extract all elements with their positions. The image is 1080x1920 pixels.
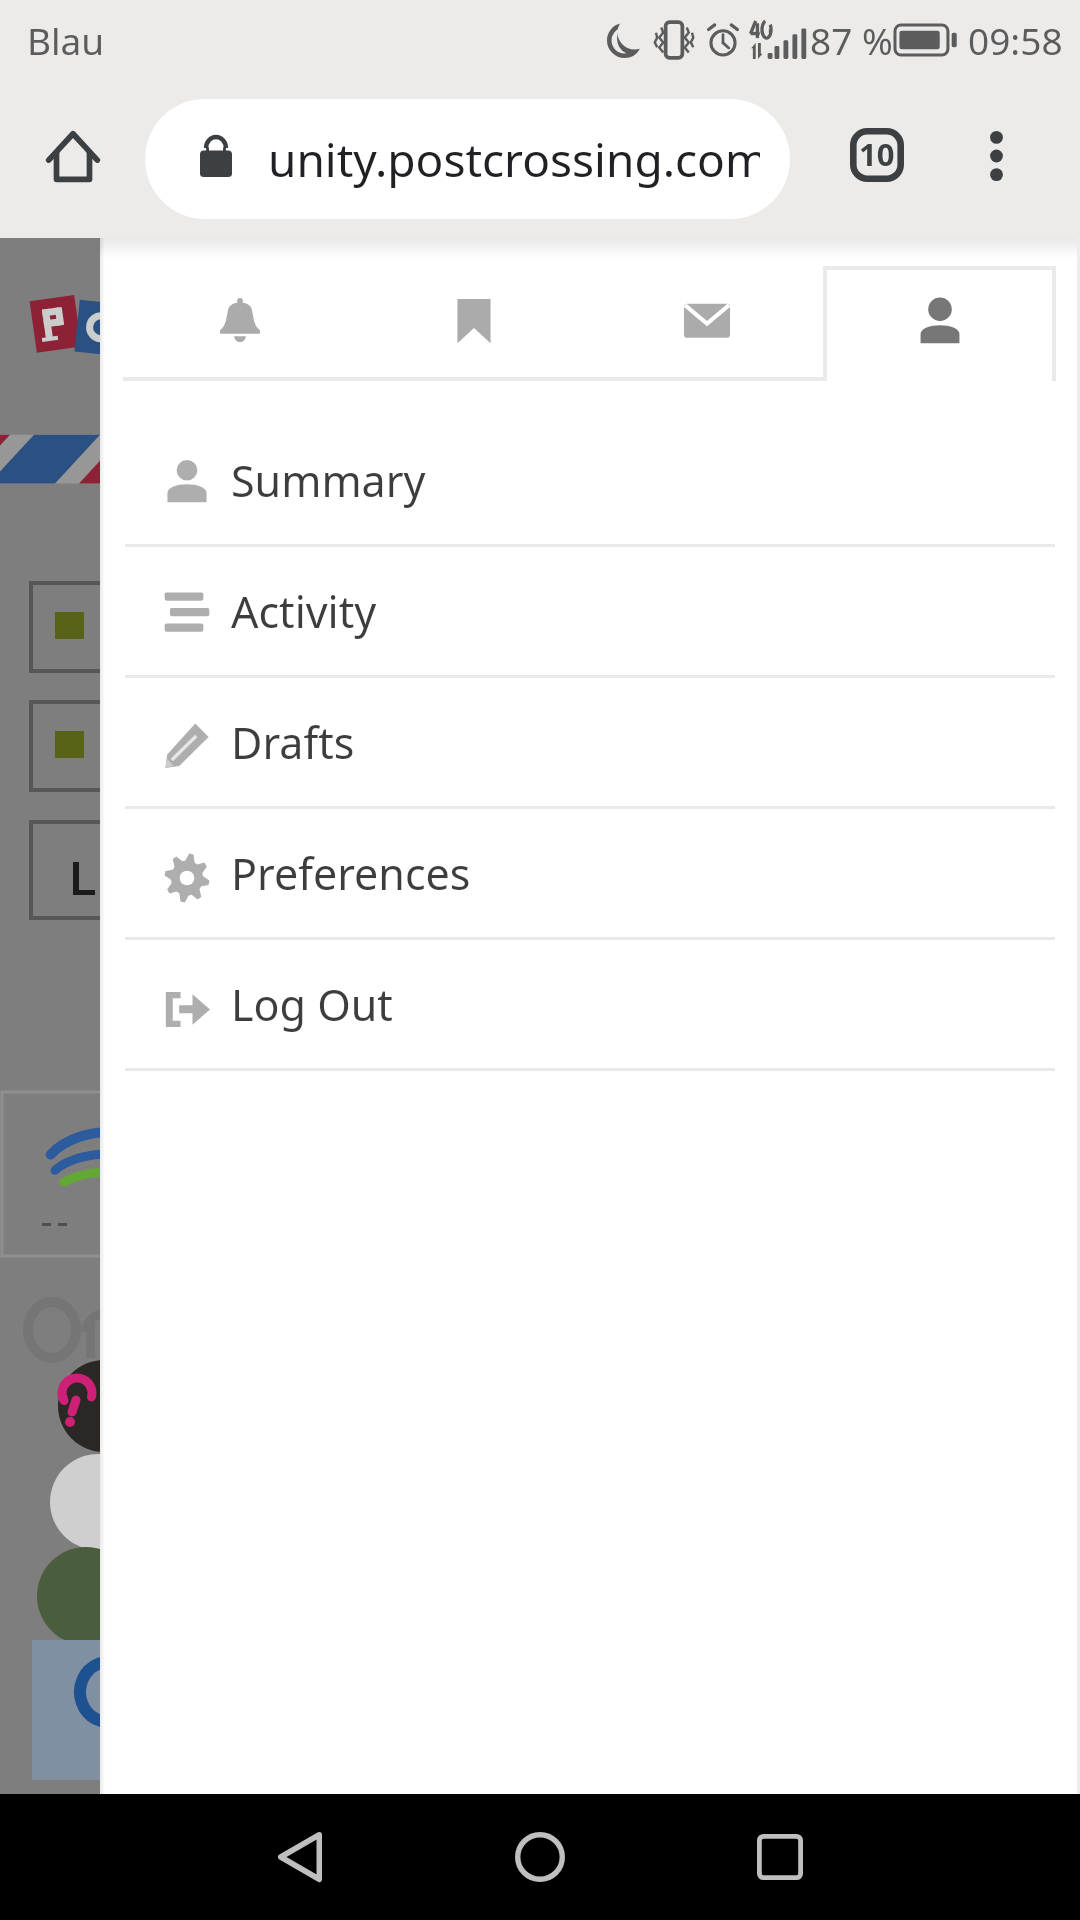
staticText: 87 % xyxy=(810,15,893,65)
button[interactable]: Tab xyxy=(123,238,357,381)
button[interactable]: Summary xyxy=(100,416,1080,547)
button[interactable]: Profile tab xyxy=(823,238,1056,381)
button[interactable]: Drafts xyxy=(100,678,1080,809)
staticText: Preferences xyxy=(231,844,471,903)
staticText: Activity xyxy=(231,582,377,641)
staticText: 10 xyxy=(859,133,895,175)
button[interactable]: Home xyxy=(480,1797,600,1917)
staticText: Summary xyxy=(231,451,426,510)
button[interactable]: unity.postcrossing.com xyxy=(145,99,790,219)
staticText: Log Out xyxy=(231,975,393,1034)
button[interactable]: Back xyxy=(240,1797,360,1917)
button[interactable]: Preferences xyxy=(100,809,1080,940)
button[interactable]: More options xyxy=(935,99,1055,219)
staticText: 09:58 xyxy=(968,15,1063,65)
staticText: unity.postcrossing.com xyxy=(270,128,760,191)
button[interactable]: Log Out xyxy=(100,940,1080,1071)
staticText: Blau xyxy=(27,15,105,65)
button[interactable]: Home xyxy=(8,96,134,222)
button[interactable]: Tabs xyxy=(817,99,937,219)
staticText: Drafts xyxy=(231,713,355,772)
button[interactable]: Tab xyxy=(590,238,823,381)
button[interactable]: Tab xyxy=(357,238,590,381)
button[interactable]: Recents xyxy=(720,1797,840,1917)
button[interactable]: Activity xyxy=(100,547,1080,678)
